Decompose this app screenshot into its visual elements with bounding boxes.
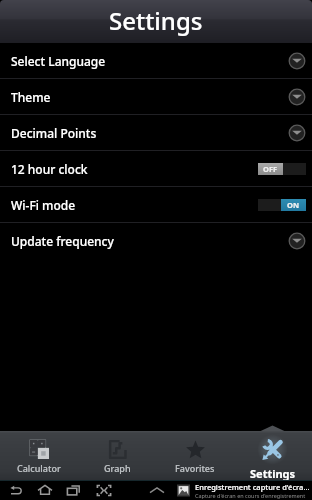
staticText: ON <box>287 200 300 210</box>
staticText: Wi-Fi mode <box>11 197 76 213</box>
staticText: Settings <box>109 4 203 37</box>
staticText: Calculator <box>17 462 61 474</box>
staticText: OFF <box>263 164 278 174</box>
button[interactable]: Settings <box>234 431 312 481</box>
button[interactable]: ON <box>258 199 306 211</box>
button[interactable]: Theme <box>0 79 312 114</box>
staticText: Enregistrement capture d'écra... <box>195 482 310 492</box>
staticText: 12 hour clock <box>11 161 88 177</box>
staticText: Graph <box>104 462 131 474</box>
staticText: Favorites <box>175 462 215 474</box>
button[interactable]: Expand <box>288 88 306 106</box>
button[interactable]: Expand <box>288 52 306 70</box>
button[interactable]: Calculator <box>0 431 78 481</box>
staticText: Theme <box>11 89 51 105</box>
button[interactable]: Select Language <box>0 43 312 78</box>
staticText: Update frequency <box>11 233 114 249</box>
button[interactable]: Expand <box>288 124 306 142</box>
button[interactable]: Favorites <box>156 431 234 481</box>
staticText: Capture d'écran en cours d'enregistremen… <box>195 492 306 499</box>
other: Settings <box>262 439 284 460</box>
staticText: Settings <box>250 466 296 481</box>
button[interactable]: Decimal Points <box>0 115 312 150</box>
button[interactable]: Update frequency <box>0 223 312 258</box>
button[interactable]: OFF <box>258 163 306 175</box>
staticText: Select Language <box>11 53 106 69</box>
button[interactable]: 12 hour clock <box>0 151 312 186</box>
staticText: Decimal Points <box>11 125 97 141</box>
button[interactable]: Wi-Fi mode <box>0 187 312 222</box>
button[interactable]: Expand <box>288 232 306 250</box>
button[interactable]: Graph <box>78 431 156 481</box>
